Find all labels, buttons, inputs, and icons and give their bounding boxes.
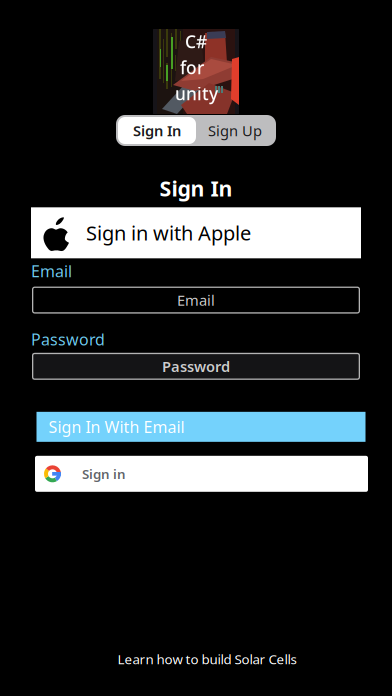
staticText: Learn how to build Solar Cells — [117, 650, 296, 668]
staticText: C# — [185, 30, 207, 53]
staticText: Sign In — [133, 121, 181, 140]
button[interactable]: Password — [31, 353, 360, 380]
button[interactable]: Email — [31, 287, 360, 314]
staticText: for — [180, 56, 204, 79]
button[interactable]: C# for unity course artwork — [153, 29, 239, 114]
staticText: Email — [31, 260, 72, 281]
staticText: Sign in with Apple — [86, 220, 251, 246]
staticText: Email — [177, 290, 215, 310]
staticText: Sign In With Email — [48, 416, 184, 437]
staticText: Sign in — [82, 465, 126, 483]
staticText: unity — [175, 82, 218, 105]
button[interactable]: Sign In With Email — [26, 412, 365, 442]
button[interactable]: Sign In — [118, 117, 196, 144]
button[interactable]: Sign in with Apple — [31, 207, 361, 258]
button[interactable]: Learn how to build Solar Cells — [95, 650, 296, 668]
button[interactable]: Sign Up — [196, 117, 274, 144]
staticText: Password — [162, 357, 230, 376]
staticText: Password — [31, 329, 105, 350]
staticText: Sign In — [159, 174, 232, 202]
button[interactable]: Sign in — [24, 456, 368, 492]
staticText: Sign Up — [208, 121, 262, 140]
